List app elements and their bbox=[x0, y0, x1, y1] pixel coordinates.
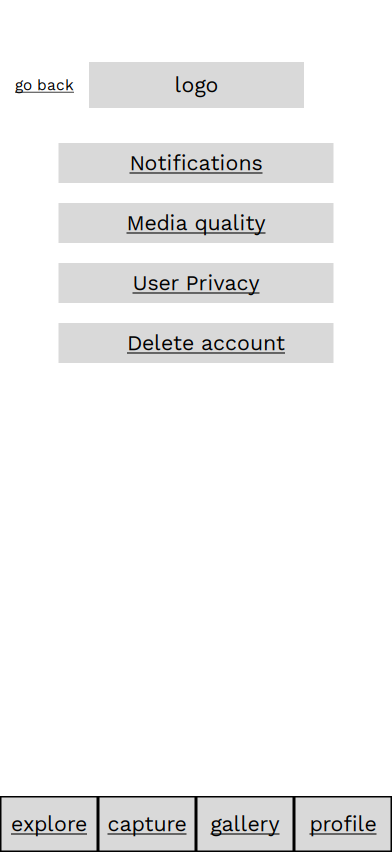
button[interactable]: capture bbox=[98, 796, 196, 852]
button[interactable]: User Privacy bbox=[58, 263, 333, 303]
staticText: Media quality bbox=[126, 210, 265, 235]
button[interactable]: profile bbox=[294, 796, 392, 852]
staticText: explore bbox=[11, 811, 87, 836]
button[interactable]: Media quality bbox=[58, 203, 333, 243]
button[interactable]: go back bbox=[15, 62, 89, 108]
staticText: gallery bbox=[210, 811, 279, 836]
button[interactable]: Notifications bbox=[58, 143, 333, 183]
button[interactable]: gallery bbox=[196, 796, 294, 852]
staticText: Delete account bbox=[127, 330, 285, 355]
staticText: profile bbox=[309, 811, 376, 836]
staticText: Notifications bbox=[129, 150, 262, 175]
button[interactable]: explore bbox=[0, 796, 98, 852]
staticText: go back bbox=[15, 76, 74, 94]
staticText: logo bbox=[174, 72, 218, 97]
button[interactable]: Delete account bbox=[58, 323, 333, 363]
staticText: capture bbox=[107, 811, 186, 836]
staticText: User Privacy bbox=[132, 270, 259, 295]
